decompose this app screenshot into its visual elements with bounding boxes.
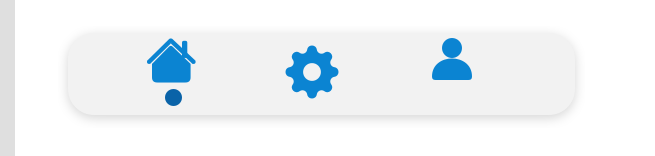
button[interactable]: Home [101,33,241,115]
button[interactable]: Settings [242,33,382,115]
button[interactable]: Profile [382,33,522,115]
